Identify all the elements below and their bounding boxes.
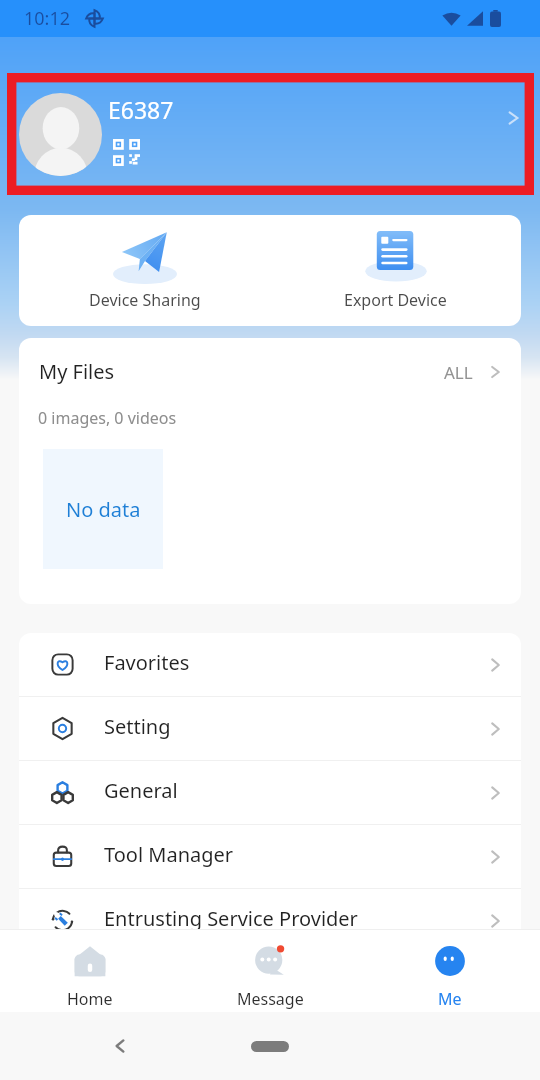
staticText: General <box>104 777 178 804</box>
button[interactable]: QR code <box>113 139 140 166</box>
staticText: Tool Manager <box>104 841 234 868</box>
button[interactable]: Profile E6387 <box>0 73 540 195</box>
button[interactable]: Device Sharing <box>19 215 270 326</box>
other: Home <box>251 1041 289 1052</box>
staticText: 10:12 <box>24 6 71 31</box>
button[interactable]: Export Device <box>270 215 521 326</box>
staticText: My Files <box>39 358 115 385</box>
staticText: Message <box>237 988 304 1010</box>
other: Back <box>114 1036 126 1056</box>
staticText: 0 images, 0 videos <box>38 407 177 429</box>
button[interactable]: Favorites <box>19 633 521 696</box>
button[interactable]: Message <box>180 930 360 1012</box>
staticText: No data <box>66 496 141 523</box>
staticText: Entrusting Service Provider <box>104 905 358 932</box>
button[interactable]: No data <box>43 449 163 569</box>
button[interactable]: General <box>19 761 521 824</box>
button[interactable]: Setting <box>19 697 521 760</box>
staticText: E6387 <box>108 94 174 125</box>
button[interactable]: ALL <box>440 354 505 389</box>
button[interactable]: Home <box>0 930 180 1012</box>
button[interactable]: Me <box>360 930 540 1012</box>
button[interactable]: Tool Manager <box>19 825 521 888</box>
staticText: Device Sharing <box>89 289 201 311</box>
staticText: Me <box>438 988 462 1010</box>
staticText: Favorites <box>104 649 190 676</box>
staticText: Home <box>67 988 113 1010</box>
staticText: ALL <box>444 361 473 384</box>
staticText: Setting <box>104 713 171 740</box>
staticText: Export Device <box>344 289 447 311</box>
button[interactable]: Entrusting Service Provider <box>19 889 521 952</box>
